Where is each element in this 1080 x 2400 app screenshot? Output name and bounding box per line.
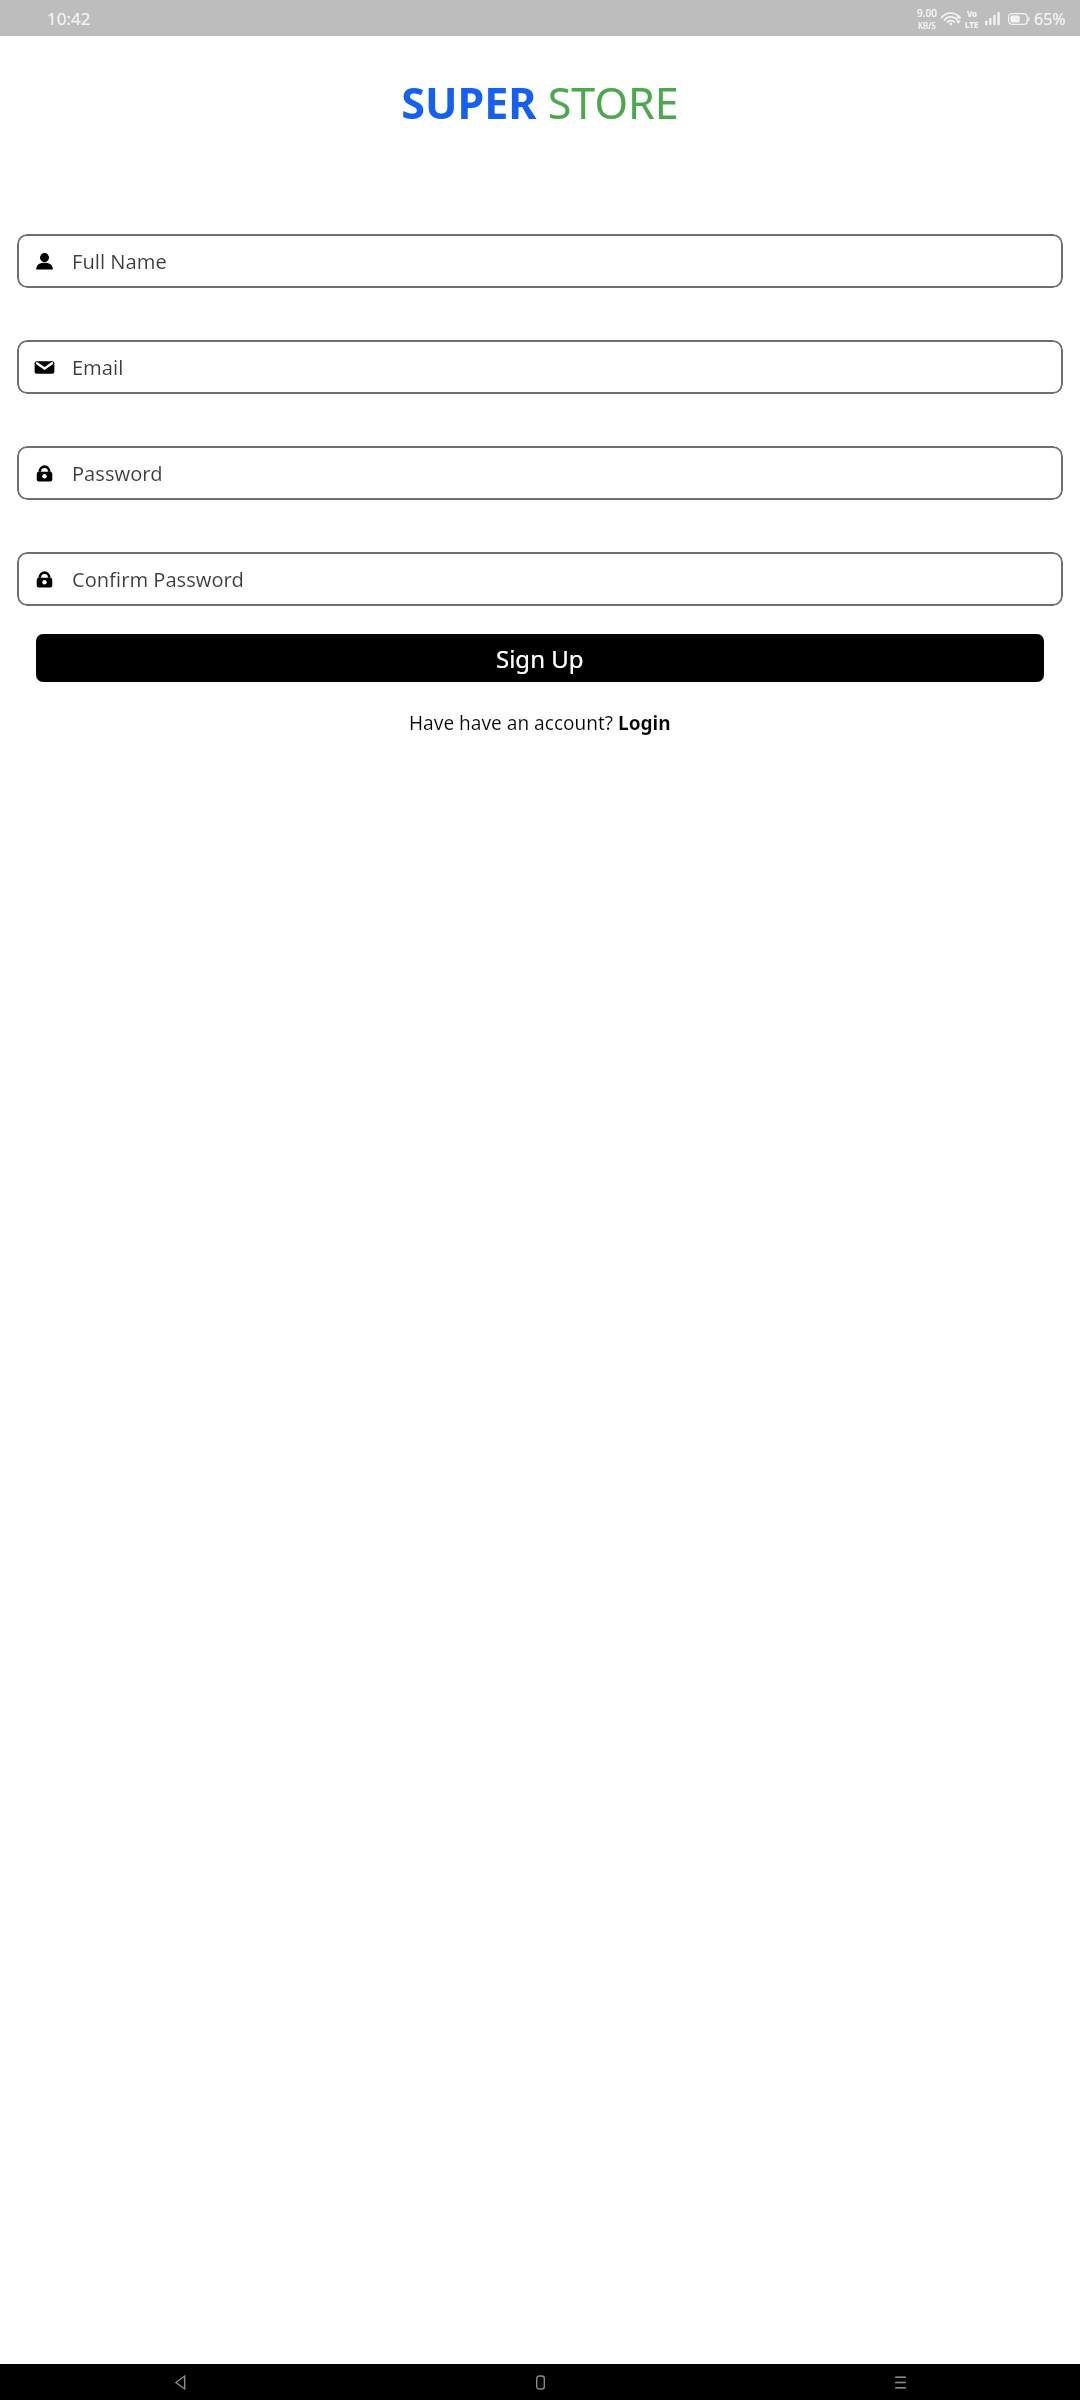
staticText: 10:42 [47,7,91,30]
button[interactable]: Recent apps [720,2364,1080,2400]
button[interactable]: Back [0,2364,360,2400]
staticText: SUPER STORE [0,73,1080,132]
button[interactable]: Sign Up [36,634,1044,682]
staticText: 9.00 [917,6,937,20]
staticText: Full Name [72,248,167,275]
staticText: LTE [965,19,979,30]
staticText: 65% [1034,8,1066,30]
staticText: Vo [967,8,978,19]
staticText: Confirm Password [72,566,244,593]
staticText: Sign Up [496,642,584,675]
staticText: Email [72,354,124,381]
button[interactable]: Confirm Password [17,552,1063,606]
button[interactable]: Full Name [17,234,1063,288]
button[interactable]: Home [360,2364,720,2400]
button[interactable]: Email [17,340,1063,394]
staticText: Password [72,460,163,487]
button[interactable]: Password [17,446,1063,500]
staticText: KB/S [918,20,936,31]
button[interactable]: Have have an account? Login [409,710,671,736]
